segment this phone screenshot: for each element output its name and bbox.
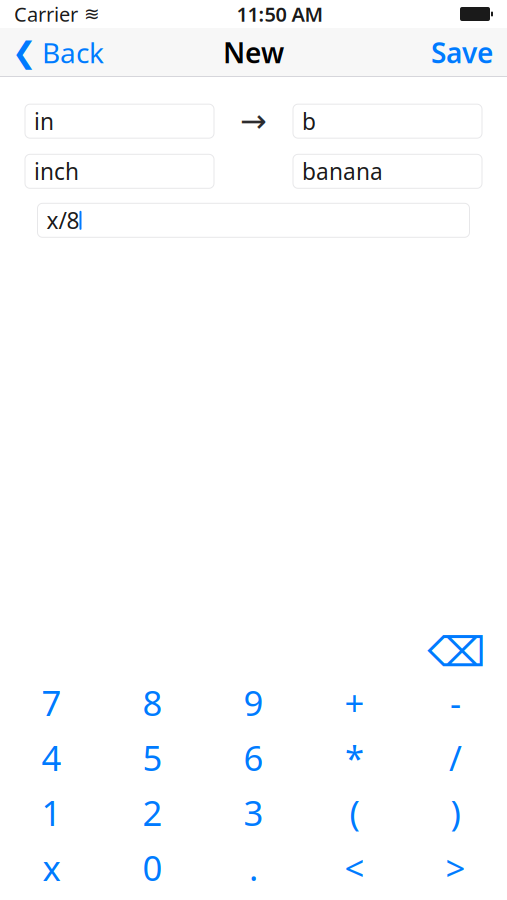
staticText: New	[223, 34, 284, 71]
button[interactable]: 4	[1, 730, 102, 785]
staticText: x/8	[46, 205, 79, 235]
staticText: (	[349, 789, 359, 835]
staticText: ⌫	[427, 628, 485, 675]
staticText: .	[249, 844, 258, 890]
button[interactable]: 8	[102, 675, 203, 730]
button[interactable]: 3	[203, 785, 304, 840]
staticText: <	[344, 844, 364, 890]
staticText: ❮	[12, 36, 37, 69]
button[interactable]: x/8	[37, 203, 469, 237]
staticText: *	[345, 734, 364, 780]
staticText: Save	[431, 34, 493, 71]
button[interactable]: 9	[203, 675, 304, 730]
staticText: 0	[142, 844, 162, 890]
button[interactable]: 2	[102, 785, 203, 840]
staticText: 8	[142, 679, 162, 725]
button[interactable]: b	[293, 104, 482, 138]
button[interactable]: ❮	[0, 29, 116, 75]
button[interactable]: 7	[1, 675, 102, 730]
button[interactable]: <	[304, 840, 405, 895]
button[interactable]: (	[304, 785, 405, 840]
staticText: 2	[142, 789, 162, 835]
staticText: ≋	[84, 3, 100, 25]
button[interactable]: inch	[25, 154, 214, 188]
staticText: 6	[243, 734, 263, 780]
button[interactable]: in	[25, 104, 214, 138]
staticText: 9	[243, 679, 263, 725]
staticText: in	[34, 106, 54, 136]
staticText: x	[42, 844, 60, 890]
button[interactable]: )	[405, 785, 506, 840]
staticText: 1	[41, 789, 61, 835]
staticText: →	[240, 103, 267, 139]
button[interactable]: *	[304, 730, 405, 785]
staticText: -	[450, 679, 461, 725]
staticText: 7	[41, 679, 61, 725]
staticText: Carrier	[14, 1, 78, 27]
staticText: banana	[302, 156, 383, 186]
button[interactable]: x	[1, 840, 102, 895]
button[interactable]: 0	[102, 840, 203, 895]
button[interactable]: 6	[203, 730, 304, 785]
button[interactable]: banana	[293, 154, 482, 188]
button[interactable]: /	[405, 730, 506, 785]
staticText: >	[445, 844, 465, 890]
staticText: 5	[142, 734, 162, 780]
staticText: inch	[34, 156, 79, 186]
staticText: 3	[243, 789, 263, 835]
button[interactable]: Delete	[406, 629, 507, 675]
button[interactable]: +	[304, 675, 405, 730]
button[interactable]: >	[405, 840, 506, 895]
button[interactable]: 1	[1, 785, 102, 840]
staticText: b	[302, 106, 316, 136]
button[interactable]: Save	[417, 29, 507, 75]
staticText: 11:50 AM	[236, 1, 323, 27]
staticText: /	[449, 734, 462, 780]
button[interactable]: -	[405, 675, 506, 730]
staticText: Back	[42, 34, 104, 71]
button[interactable]: .	[203, 840, 304, 895]
button[interactable]: 5	[102, 730, 203, 785]
staticText: )	[450, 789, 460, 835]
staticText: +	[344, 679, 364, 725]
staticText: 4	[41, 734, 61, 780]
